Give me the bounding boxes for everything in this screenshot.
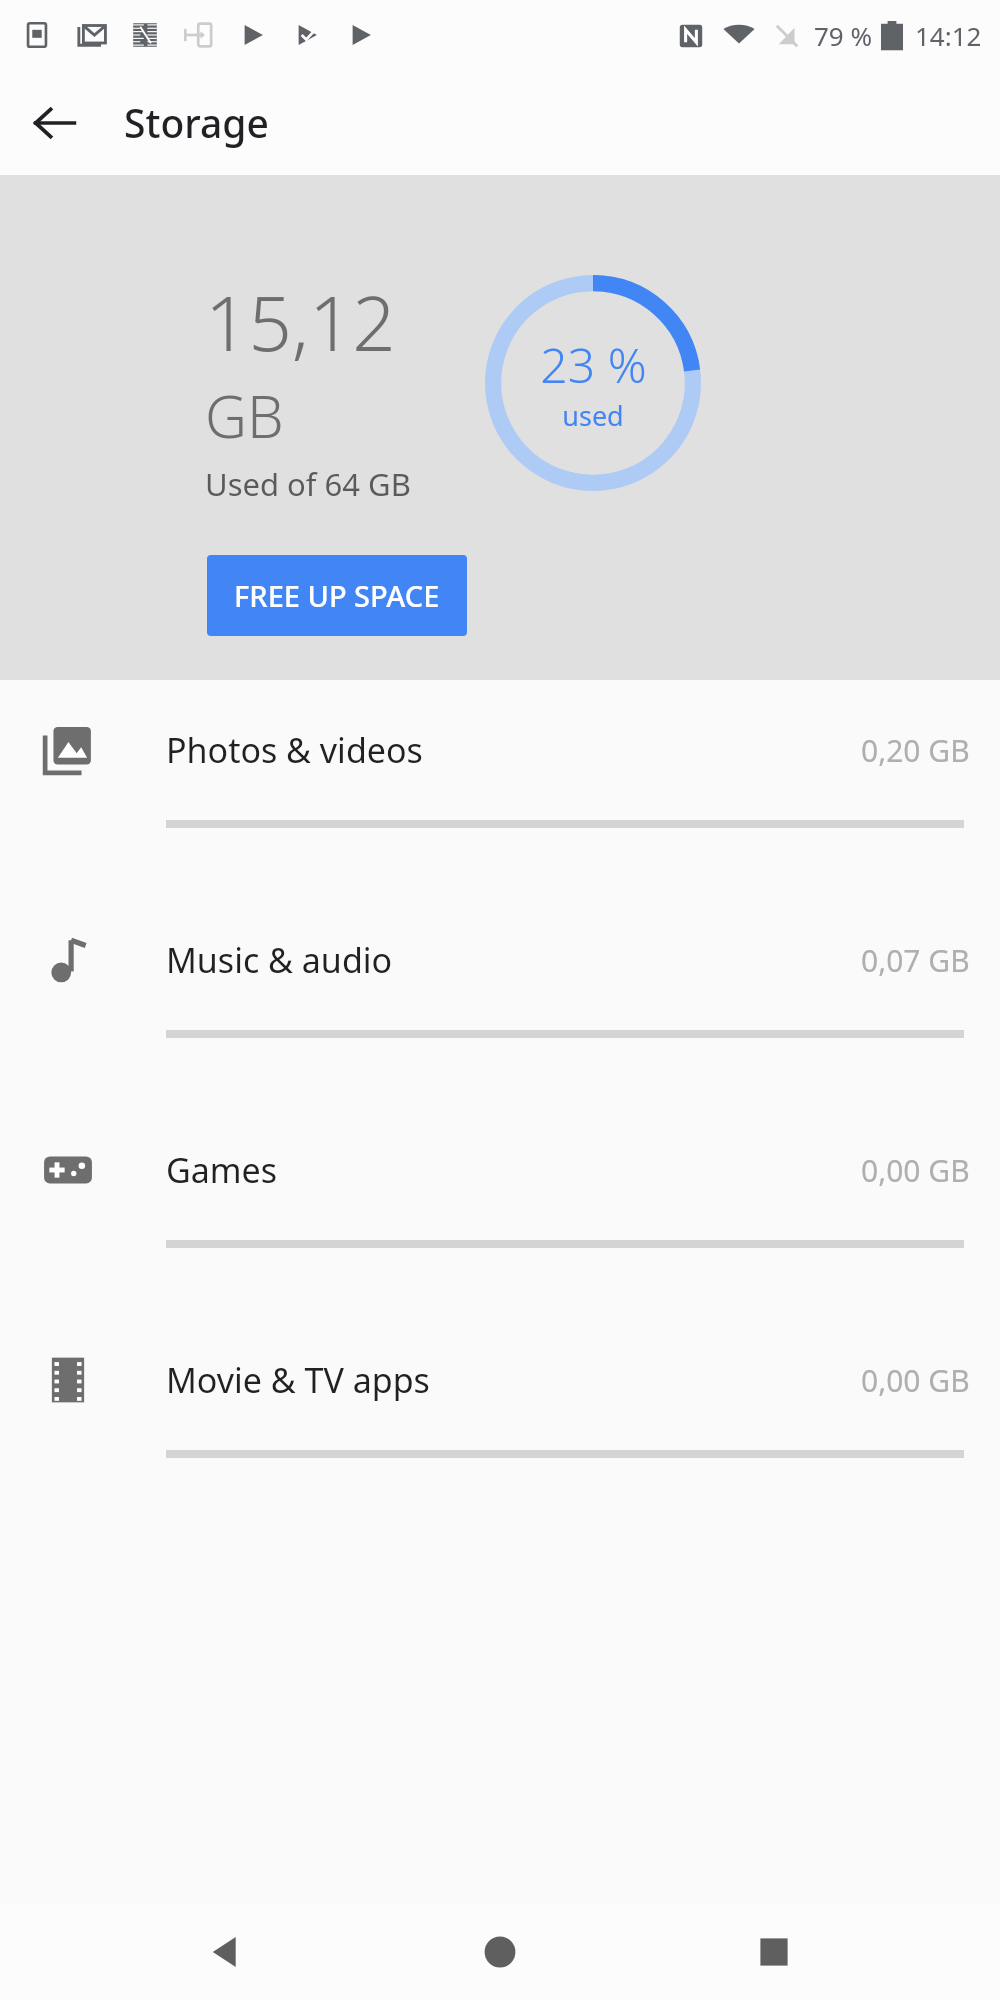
staticText: GB: [205, 376, 284, 455]
button[interactable]: FREE UP SPACE: [207, 555, 467, 636]
button[interactable]: Recent apps: [726, 1904, 822, 2000]
button[interactable]: Movie & TV apps: [0, 1310, 1000, 1520]
button[interactable]: Games: [0, 1100, 1000, 1310]
button[interactable]: Music & audio: [0, 890, 1000, 1100]
staticText: Used of 64 GB: [205, 463, 411, 505]
staticText: used: [562, 397, 624, 434]
staticText: 0,20 GB: [861, 730, 970, 771]
staticText: 0,07 GB: [861, 940, 970, 981]
staticText: FREE UP SPACE: [234, 576, 440, 615]
staticText: Storage: [124, 96, 269, 149]
staticText: Movie & TV apps: [166, 1357, 430, 1403]
staticText: Music & audio: [166, 937, 393, 983]
staticText: 14:12: [915, 18, 982, 53]
staticText: 0,00 GB: [861, 1360, 970, 1401]
button[interactable]: Back: [22, 90, 88, 156]
button[interactable]: Photos & videos: [0, 680, 1000, 890]
staticText: 23 %: [540, 332, 647, 397]
staticText: 15,12: [205, 270, 396, 374]
button[interactable]: Home: [452, 1904, 548, 2000]
staticText: 79 %: [814, 18, 873, 53]
staticText: Photos & videos: [166, 727, 423, 773]
staticText: 0,00 GB: [861, 1150, 970, 1191]
staticText: Games: [166, 1147, 278, 1193]
button[interactable]: Back: [178, 1904, 274, 2000]
